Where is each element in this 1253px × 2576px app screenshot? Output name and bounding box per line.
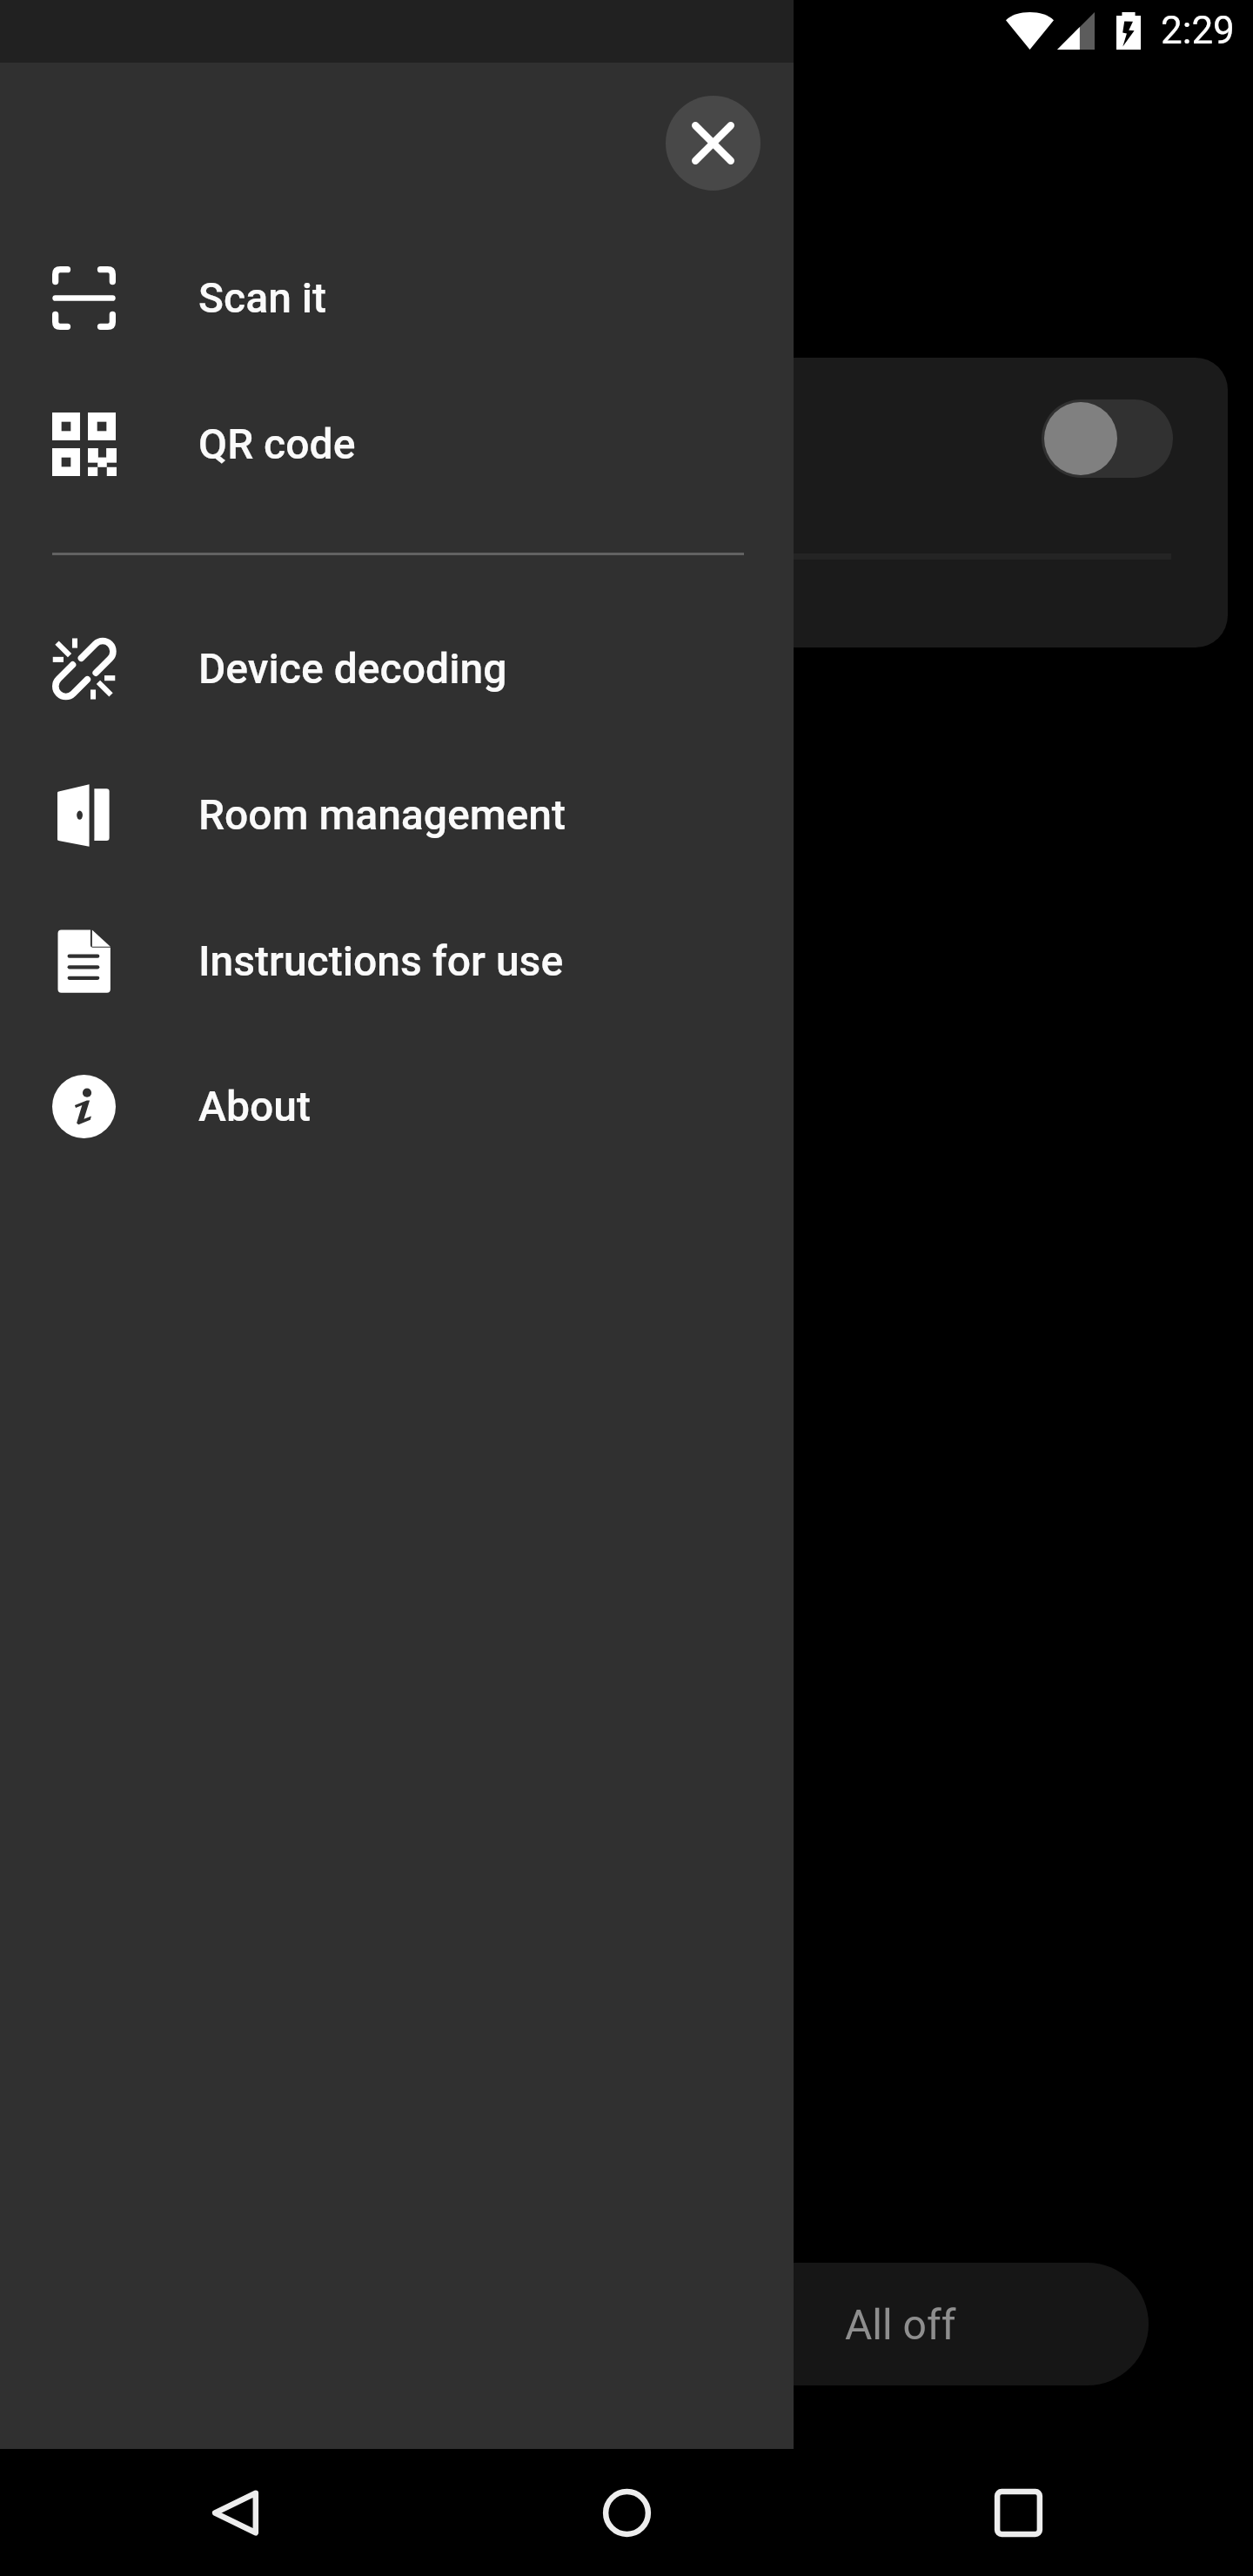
button[interactable]: About	[0, 1036, 794, 1176]
button[interactable]: Room management	[0, 745, 794, 884]
button[interactable]: Back	[174, 2452, 296, 2573]
button[interactable]: QR code	[0, 374, 794, 513]
button[interactable]: Close	[666, 96, 761, 191]
button[interactable]: Home	[566, 2452, 687, 2573]
staticText: 2:29	[1161, 8, 1235, 53]
button[interactable]: Recents	[957, 2452, 1079, 2573]
button[interactable]: Instructions for use	[0, 891, 794, 1030]
staticText: Device decoding	[198, 644, 507, 693]
button[interactable]: Scan it	[0, 228, 794, 367]
button[interactable]	[1042, 399, 1173, 478]
staticText: All off	[845, 2300, 956, 2349]
button[interactable]: Device decoding	[0, 599, 794, 738]
staticText: Scan it	[198, 273, 327, 322]
staticText: Room management	[198, 790, 566, 839]
staticText: Instructions for use	[198, 936, 564, 985]
button[interactable]: All off	[0, 2263, 1149, 2385]
button[interactable]	[52, 358, 1228, 647]
staticText: About	[198, 1082, 311, 1130]
staticText: QR code	[198, 419, 356, 468]
